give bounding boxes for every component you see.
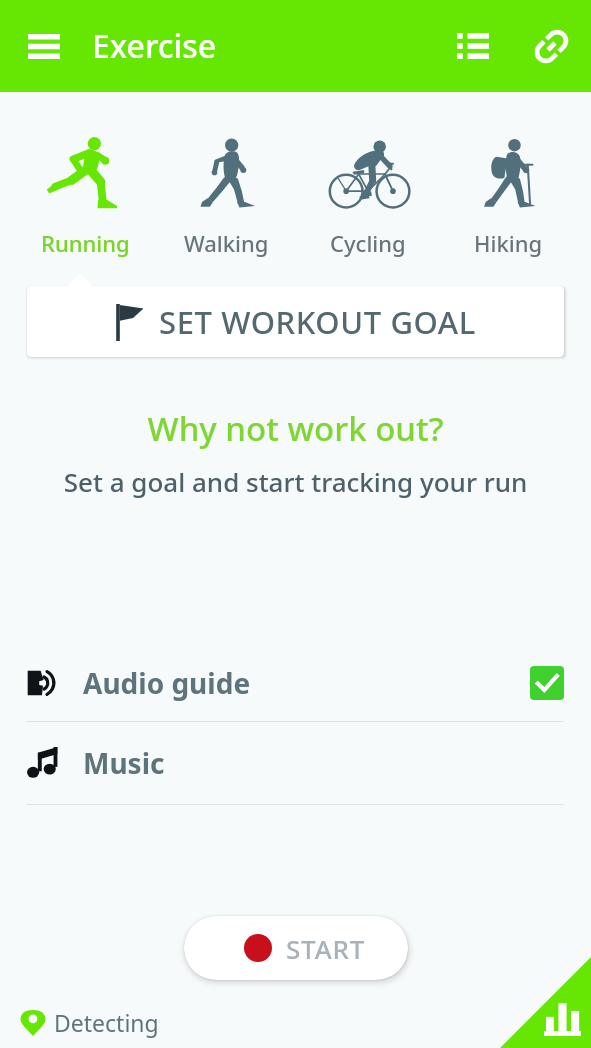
staticText: START <box>286 931 366 966</box>
button[interactable]: START <box>184 916 408 980</box>
button[interactable]: SET WORKOUT GOAL <box>27 286 564 357</box>
button[interactable]: History list <box>437 0 513 92</box>
button[interactable]: Walking <box>156 92 297 258</box>
staticText: Hiking <box>474 228 543 258</box>
staticText: Running <box>41 228 130 258</box>
staticText: SET WORKOUT GOAL <box>159 301 476 343</box>
button[interactable]: Cycling <box>297 92 438 258</box>
button[interactable]: Detecting <box>20 1007 159 1038</box>
staticText: Set a goal and start tracking your run <box>0 464 591 499</box>
button[interactable]: Statistics <box>500 957 591 1048</box>
button[interactable]: Music <box>27 722 564 804</box>
button[interactable]: Running <box>14 92 156 258</box>
staticText: Audio guide <box>83 664 251 702</box>
button[interactable]: Hiking <box>438 92 579 258</box>
button[interactable]: Menu <box>0 0 88 92</box>
button[interactable]: Audio guide <box>27 645 564 721</box>
staticText: Why not work out? <box>0 406 591 451</box>
button[interactable]: Link device <box>513 0 589 92</box>
staticText: Walking <box>184 228 269 258</box>
staticText: Exercise <box>92 24 217 68</box>
staticText: Music <box>83 744 165 782</box>
staticText: Cycling <box>330 228 406 258</box>
staticText: Detecting <box>54 1007 159 1038</box>
